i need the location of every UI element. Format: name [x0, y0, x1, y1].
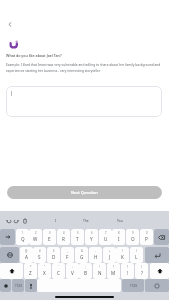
staticText: (: [122, 249, 123, 253]
staticText: ?: [141, 270, 143, 276]
staticText: :: [72, 265, 73, 269]
button[interactable]: 2: [29, 229, 42, 245]
staticText: Z: [29, 270, 32, 276]
staticText: 2: [35, 231, 37, 235]
button[interactable]: [6, 86, 162, 117]
button[interactable]: &: [75, 247, 88, 263]
staticText: Example: I liked that Imani was very vul…: [6, 63, 167, 73]
button[interactable]: +: [103, 247, 116, 263]
button[interactable]: ?: [107, 263, 120, 279]
button[interactable]: Back: [3, 18, 15, 30]
button[interactable]: 9: [126, 229, 139, 245]
button[interactable]: !: [93, 263, 106, 279]
button[interactable]: 1: [16, 229, 29, 245]
staticText: 1: [127, 265, 129, 269]
button[interactable]: Numbers: [122, 279, 144, 292]
staticText: 1: [22, 231, 24, 235]
button[interactable]: _: [61, 247, 74, 263]
button[interactable]: I: [44, 213, 68, 226]
button[interactable]: Clipboard: [20, 216, 29, 225]
button[interactable]: -: [89, 247, 102, 263]
staticText: You: [117, 218, 123, 222]
staticText: C: [57, 270, 60, 276]
staticText: T: [76, 236, 79, 242]
staticText: S: [38, 254, 41, 260]
staticText: O: [131, 236, 135, 242]
button[interactable]: Redo: [11, 216, 20, 225]
staticText: B: [84, 270, 87, 276]
staticText: F: [66, 254, 69, 260]
staticText: ': [58, 265, 59, 269]
staticText: #: [39, 249, 41, 253]
button[interactable]: Enter: [145, 247, 169, 263]
staticText: ": [44, 265, 46, 269]
staticText: *: [30, 265, 32, 269]
button[interactable]: Tab: [0, 229, 15, 245]
staticText: K: [121, 254, 124, 260]
staticText: X: [43, 270, 46, 276]
button[interactable]: ): [130, 247, 143, 263]
staticText: 9: [132, 231, 134, 235]
button[interactable]: 7: [99, 229, 112, 245]
staticText: D: [52, 254, 56, 260]
button[interactable]: Settings: [0, 279, 11, 292]
button[interactable]: Voice input: [25, 279, 37, 292]
button[interactable]: You: [108, 213, 132, 226]
button[interactable]: Backspace: [154, 229, 169, 245]
button[interactable]: 4: [57, 229, 70, 245]
staticText: Y: [90, 236, 93, 242]
button[interactable]: ": [38, 263, 51, 279]
button[interactable]: Emoji: [145, 279, 169, 292]
staticText: J: [109, 254, 111, 260]
button[interactable]: @: [20, 247, 33, 263]
button[interactable]: 5: [71, 229, 84, 245]
button[interactable]: 0: [140, 229, 153, 245]
staticText: L: [135, 254, 138, 260]
staticText: R: [62, 236, 65, 242]
staticText: 7: [105, 231, 107, 235]
staticText: The: [83, 218, 89, 222]
button[interactable]: 6: [85, 229, 98, 245]
staticText: !: [99, 265, 100, 269]
staticText: W: [33, 236, 38, 242]
staticText: ;: [85, 265, 86, 269]
button[interactable]: Symbols: [12, 279, 24, 292]
button[interactable]: #: [33, 247, 46, 263]
button[interactable]: /: [135, 263, 148, 279]
button[interactable]: Shift: [0, 263, 23, 279]
staticText: ?123: [15, 284, 22, 288]
button[interactable]: ': [52, 263, 65, 279]
button[interactable]: *: [24, 263, 37, 279]
staticText: _: [67, 249, 69, 253]
button[interactable]: (: [116, 247, 129, 263]
staticText: H: [94, 254, 98, 260]
button[interactable]: Shift: [150, 263, 169, 279]
staticText: 3: [49, 231, 51, 235]
button[interactable]: Undo: [4, 216, 13, 225]
button[interactable]: 8: [112, 229, 125, 245]
staticText: G: [80, 254, 84, 260]
staticText: What do you like about Joel Tan?: [6, 53, 62, 58]
button[interactable]: :: [66, 263, 79, 279]
staticText: M: [111, 270, 116, 276]
staticText: I: [118, 236, 120, 242]
staticText: N: [98, 270, 102, 276]
staticText: 5: [77, 231, 79, 235]
staticText: I: [55, 218, 57, 222]
staticText: +: [109, 249, 111, 253]
button[interactable]: ;: [79, 263, 92, 279]
staticText: 4: [63, 231, 65, 235]
button[interactable]: Language: [0, 247, 19, 263]
staticText: 0: [146, 231, 148, 235]
button[interactable]: Next Question: [7, 186, 162, 199]
button[interactable]: 1: [121, 263, 134, 279]
staticText: V: [71, 270, 74, 276]
staticText: Next Question: [71, 190, 98, 195]
button[interactable]: 3: [43, 229, 56, 245]
button[interactable]: The: [74, 213, 98, 226]
staticText: P: [145, 236, 148, 242]
staticText: -: [95, 249, 96, 253]
button[interactable]: $: [47, 247, 60, 263]
staticText: ?: [113, 265, 115, 269]
